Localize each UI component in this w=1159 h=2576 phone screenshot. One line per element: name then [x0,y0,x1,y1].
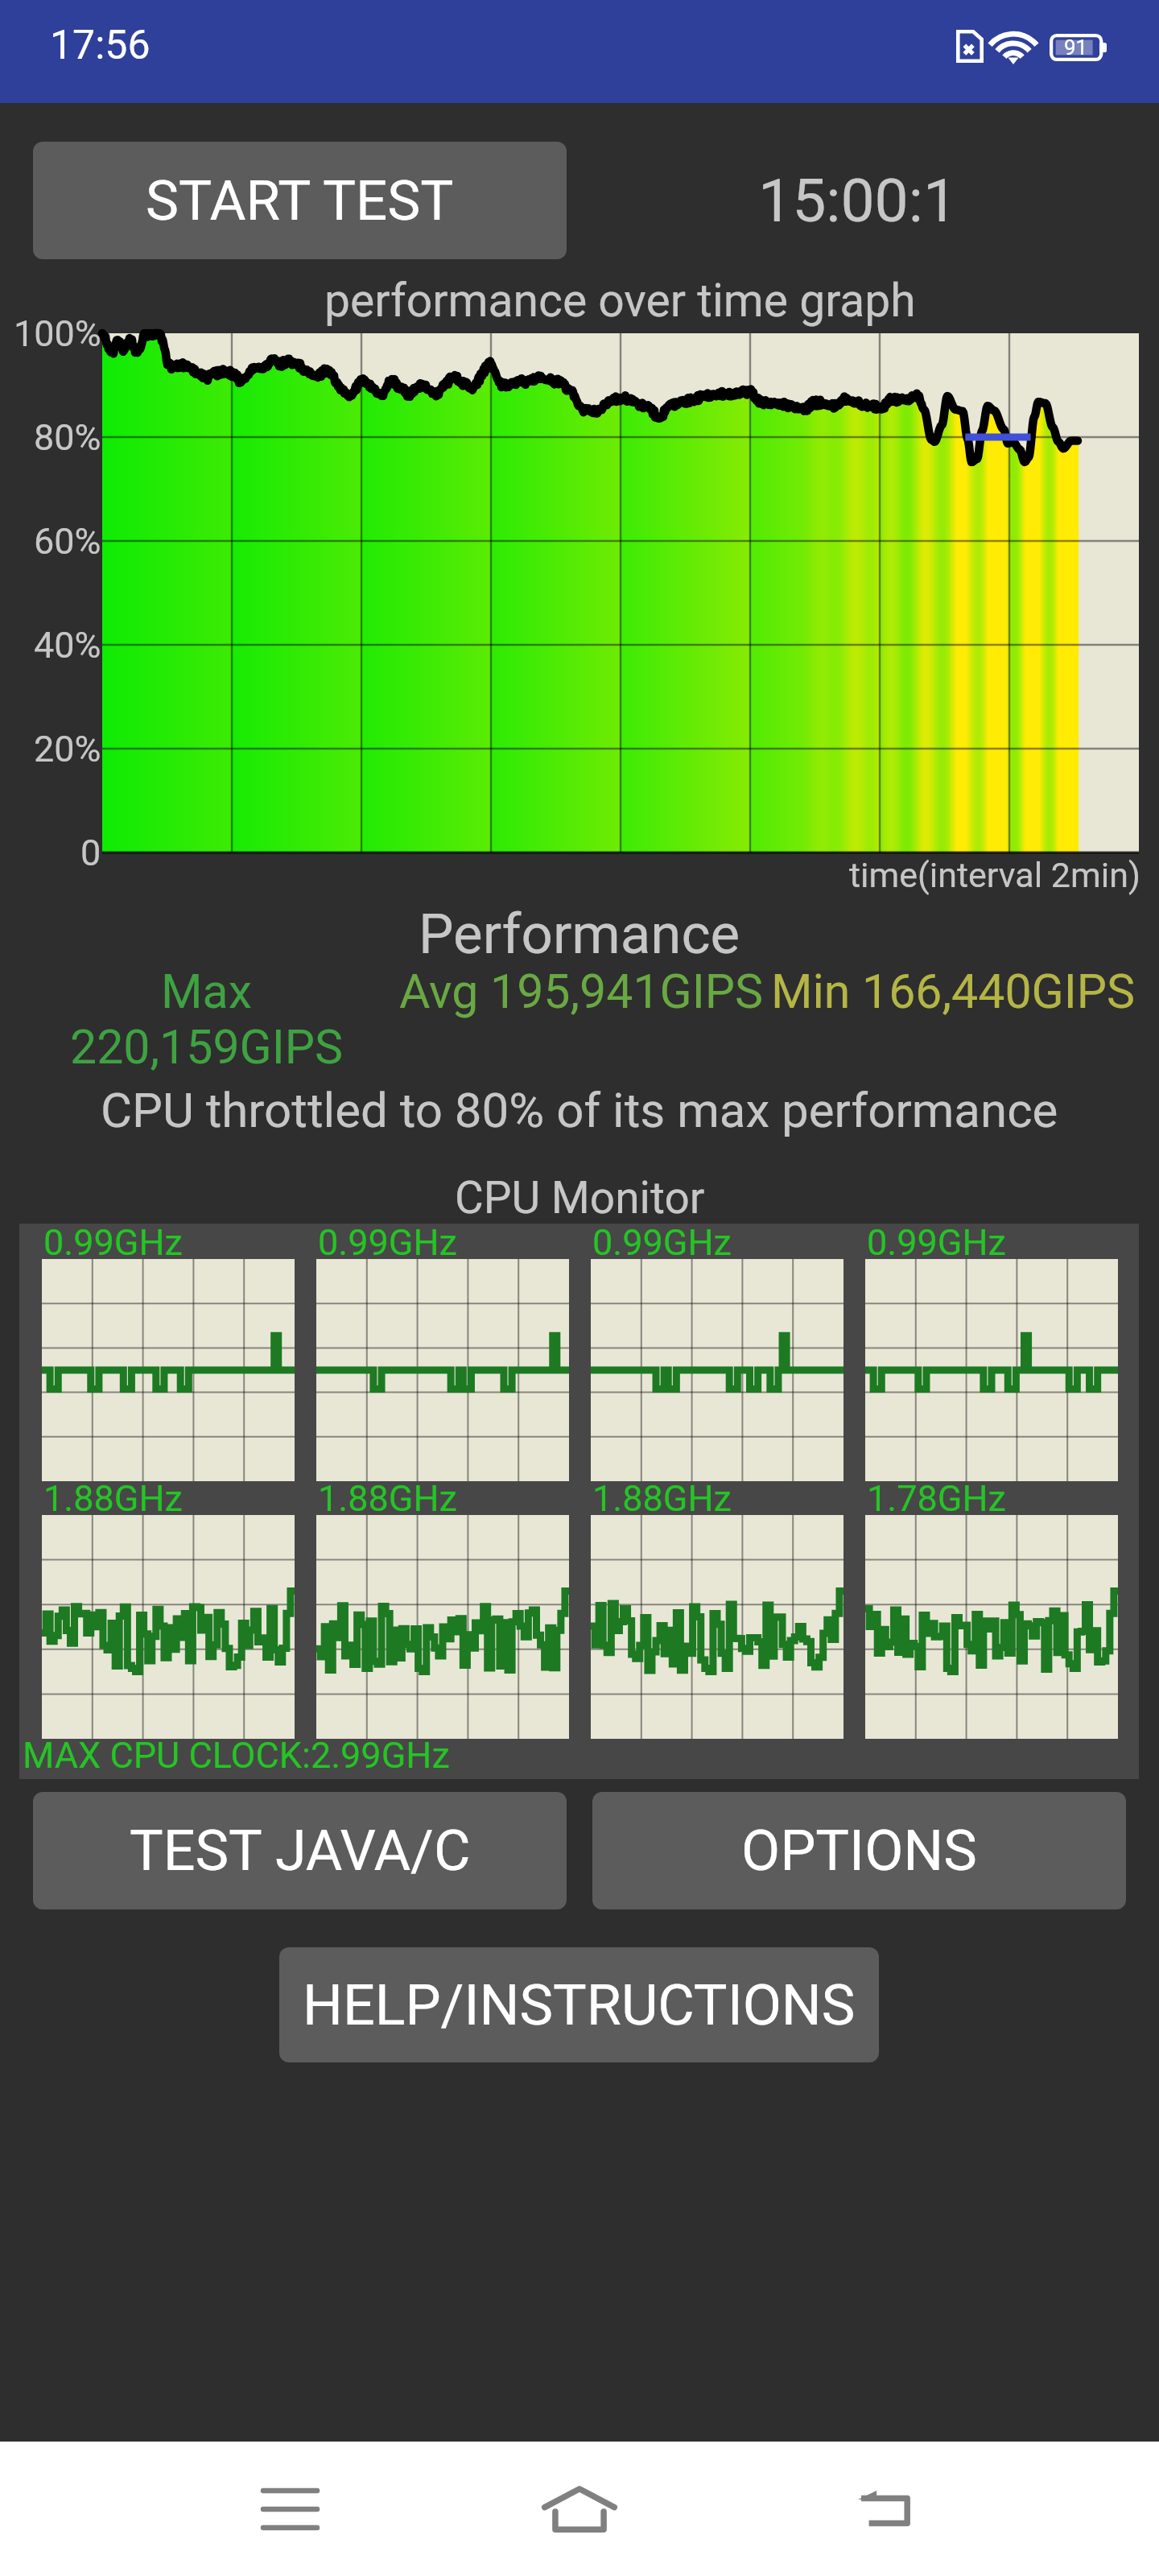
staticText: 0.99GHz [592,1221,732,1264]
button[interactable]: Back [789,2442,982,2576]
staticText: Performance [419,902,740,967]
staticText: 91 [1064,35,1088,60]
staticText: 1.88GHz [318,1477,457,1520]
staticText: CPU throttled to 80% of its max performa… [101,1082,1058,1138]
staticText: 60% [34,520,101,563]
staticText: HELP/INSTRUCTIONS [303,1972,856,2038]
staticText: 0.99GHz [318,1221,457,1264]
staticText: 0.99GHz [43,1221,183,1264]
button[interactable]: HELP/INSTRUCTIONS [279,1947,879,2062]
staticText: MAX CPU CLOCK:2.99GHz [23,1734,450,1777]
button[interactable]: Recent apps [193,2442,386,2576]
staticText: Avg 195,941GIPS [395,964,767,1019]
staticText: 1.78GHz [867,1477,1006,1520]
staticText: 1.88GHz [43,1477,183,1520]
staticText: CPU Monitor [455,1172,705,1224]
button[interactable]: OPTIONS [592,1792,1126,1909]
staticText: Min 166,440GIPS [767,964,1139,1019]
staticText: TEST JAVA/C [130,1818,471,1884]
button[interactable]: TEST JAVA/C [33,1792,567,1909]
staticText: 1.88GHz [592,1477,732,1520]
staticText: 17:56 [50,22,151,69]
staticText: 40% [34,624,101,667]
staticText: 20% [34,728,101,770]
staticText: time(interval 2min) [849,855,1140,895]
staticText: performance over time graph [324,274,916,328]
button[interactable]: Home [483,2442,676,2576]
staticText: 15:00:1 [758,165,958,236]
staticText: Max 220,159GIPS [6,964,406,1075]
staticText: 0 [80,832,101,874]
button[interactable]: START TEST [33,142,567,259]
staticText: 0.99GHz [867,1221,1006,1264]
staticText: START TEST [146,168,454,233]
staticText: OPTIONS [741,1818,977,1884]
staticText: 80% [34,416,101,459]
staticText: 100% [14,312,101,355]
